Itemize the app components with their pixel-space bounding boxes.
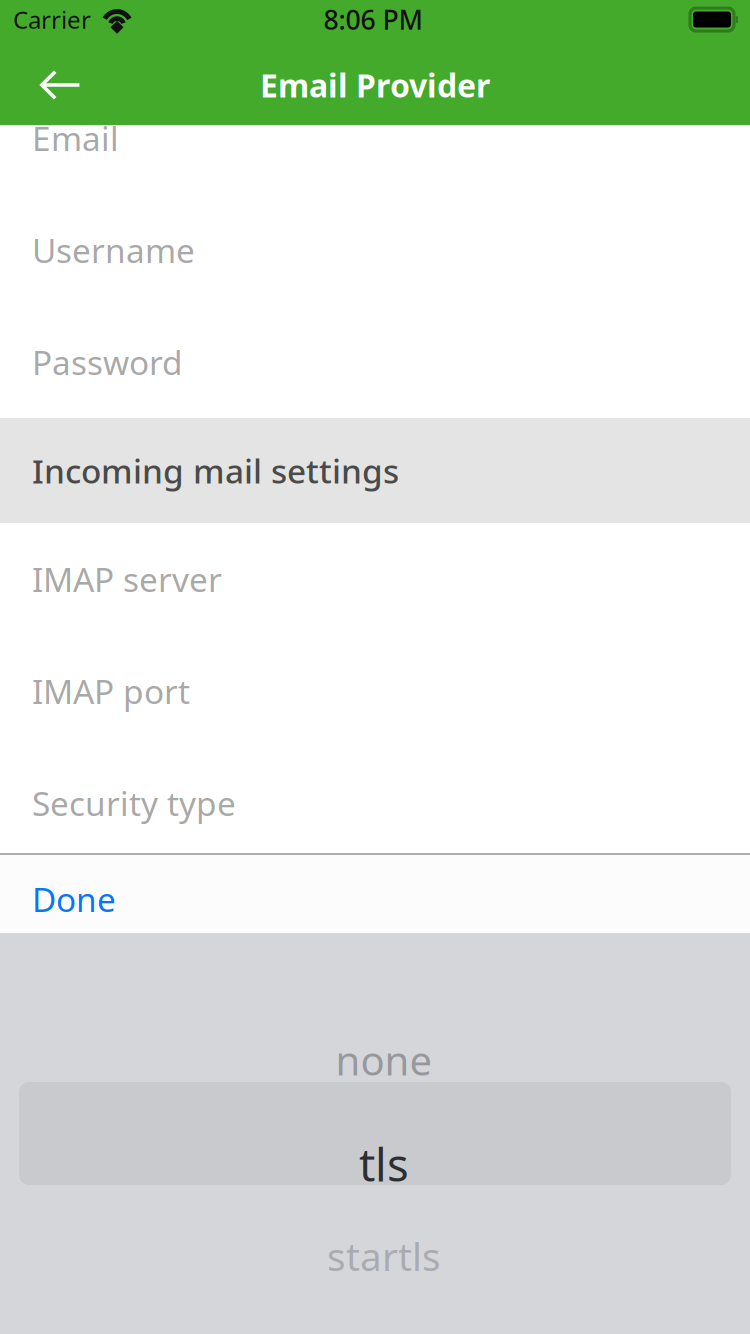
staticText: IMAP server [32, 557, 222, 601]
button[interactable]: none [9, 1038, 750, 1082]
staticText: Carrier [13, 4, 91, 35]
staticText: Username [32, 228, 195, 272]
staticText: Security type [32, 781, 236, 825]
staticText: Incoming mail settings [32, 448, 399, 493]
button[interactable]: Back [0, 45, 81, 125]
staticText: IMAP port [32, 669, 190, 713]
button[interactable]: startls [9, 1234, 750, 1278]
staticText: Password [32, 340, 183, 384]
button[interactable]: IMAP port [0, 635, 750, 747]
button[interactable]: IMAP server [0, 523, 750, 635]
staticText: startls [327, 1230, 441, 1282]
button[interactable]: Email [0, 125, 750, 194]
button[interactable]: Password [0, 306, 750, 418]
staticText: none [335, 1033, 432, 1086]
staticText: tls [359, 1134, 409, 1194]
staticText: Email Provider [260, 64, 490, 106]
staticText: Done [32, 877, 116, 921]
button[interactable]: Security type [0, 747, 750, 859]
button[interactable]: tls [9, 1137, 750, 1191]
staticText: 8:06 PM [323, 2, 422, 37]
button[interactable]: Username [0, 194, 750, 306]
button[interactable]: Done [0, 855, 750, 933]
staticText: Email [32, 116, 119, 160]
